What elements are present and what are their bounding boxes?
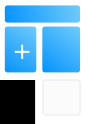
button[interactable]: Add [5, 26, 36, 72]
button[interactable]: Banner [5, 5, 80, 23]
button[interactable]: Open [42, 26, 80, 72]
